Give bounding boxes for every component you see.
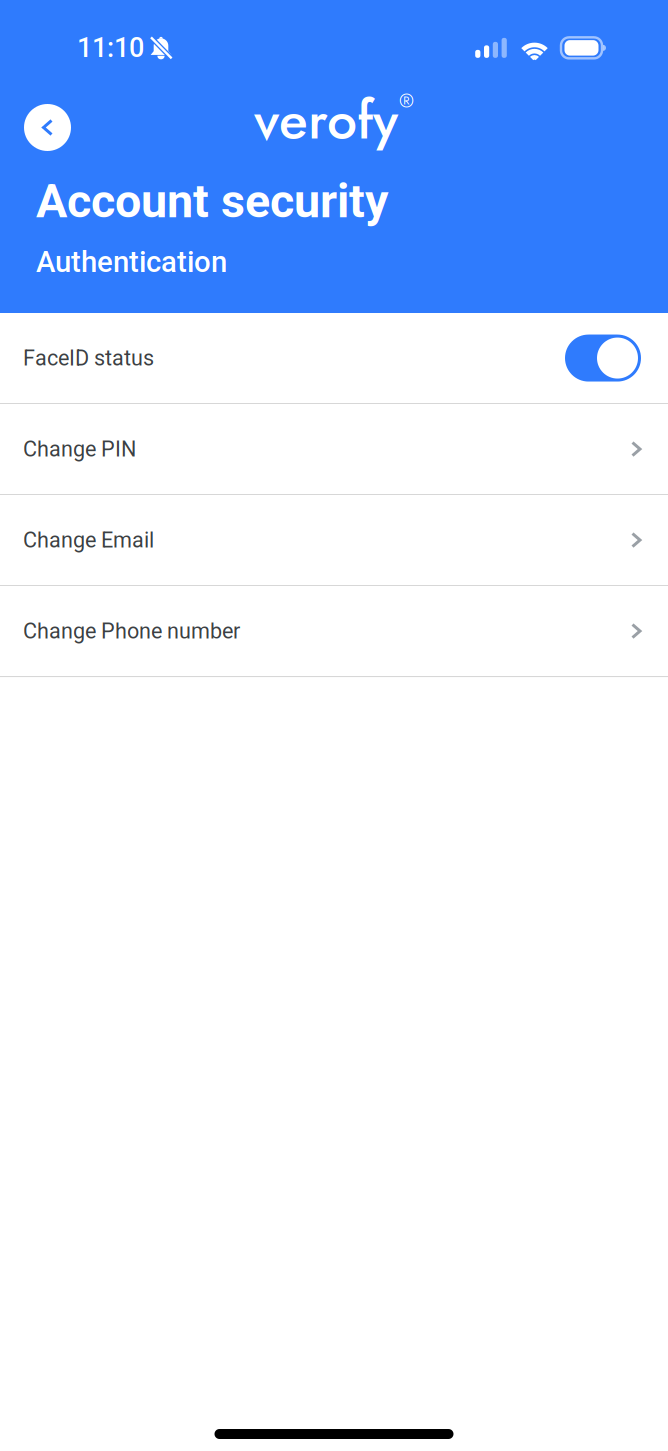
button[interactable]: Change Phone number bbox=[0, 586, 668, 677]
button[interactable]: FaceID status bbox=[0, 313, 668, 404]
staticText: Change Email bbox=[23, 527, 154, 553]
staticText: ® bbox=[399, 87, 414, 114]
button[interactable]: Back bbox=[24, 104, 71, 151]
button[interactable]: Change PIN bbox=[0, 404, 668, 495]
staticText: 11:10 bbox=[77, 32, 144, 64]
staticText: verofy bbox=[254, 81, 398, 159]
staticText: Authentication bbox=[36, 245, 227, 279]
staticText: Change Phone number bbox=[23, 618, 240, 644]
button[interactable]: Change Email bbox=[0, 495, 668, 586]
staticText: Account security bbox=[36, 174, 388, 229]
staticText: Change PIN bbox=[23, 436, 136, 462]
staticText: FaceID status bbox=[23, 345, 154, 371]
